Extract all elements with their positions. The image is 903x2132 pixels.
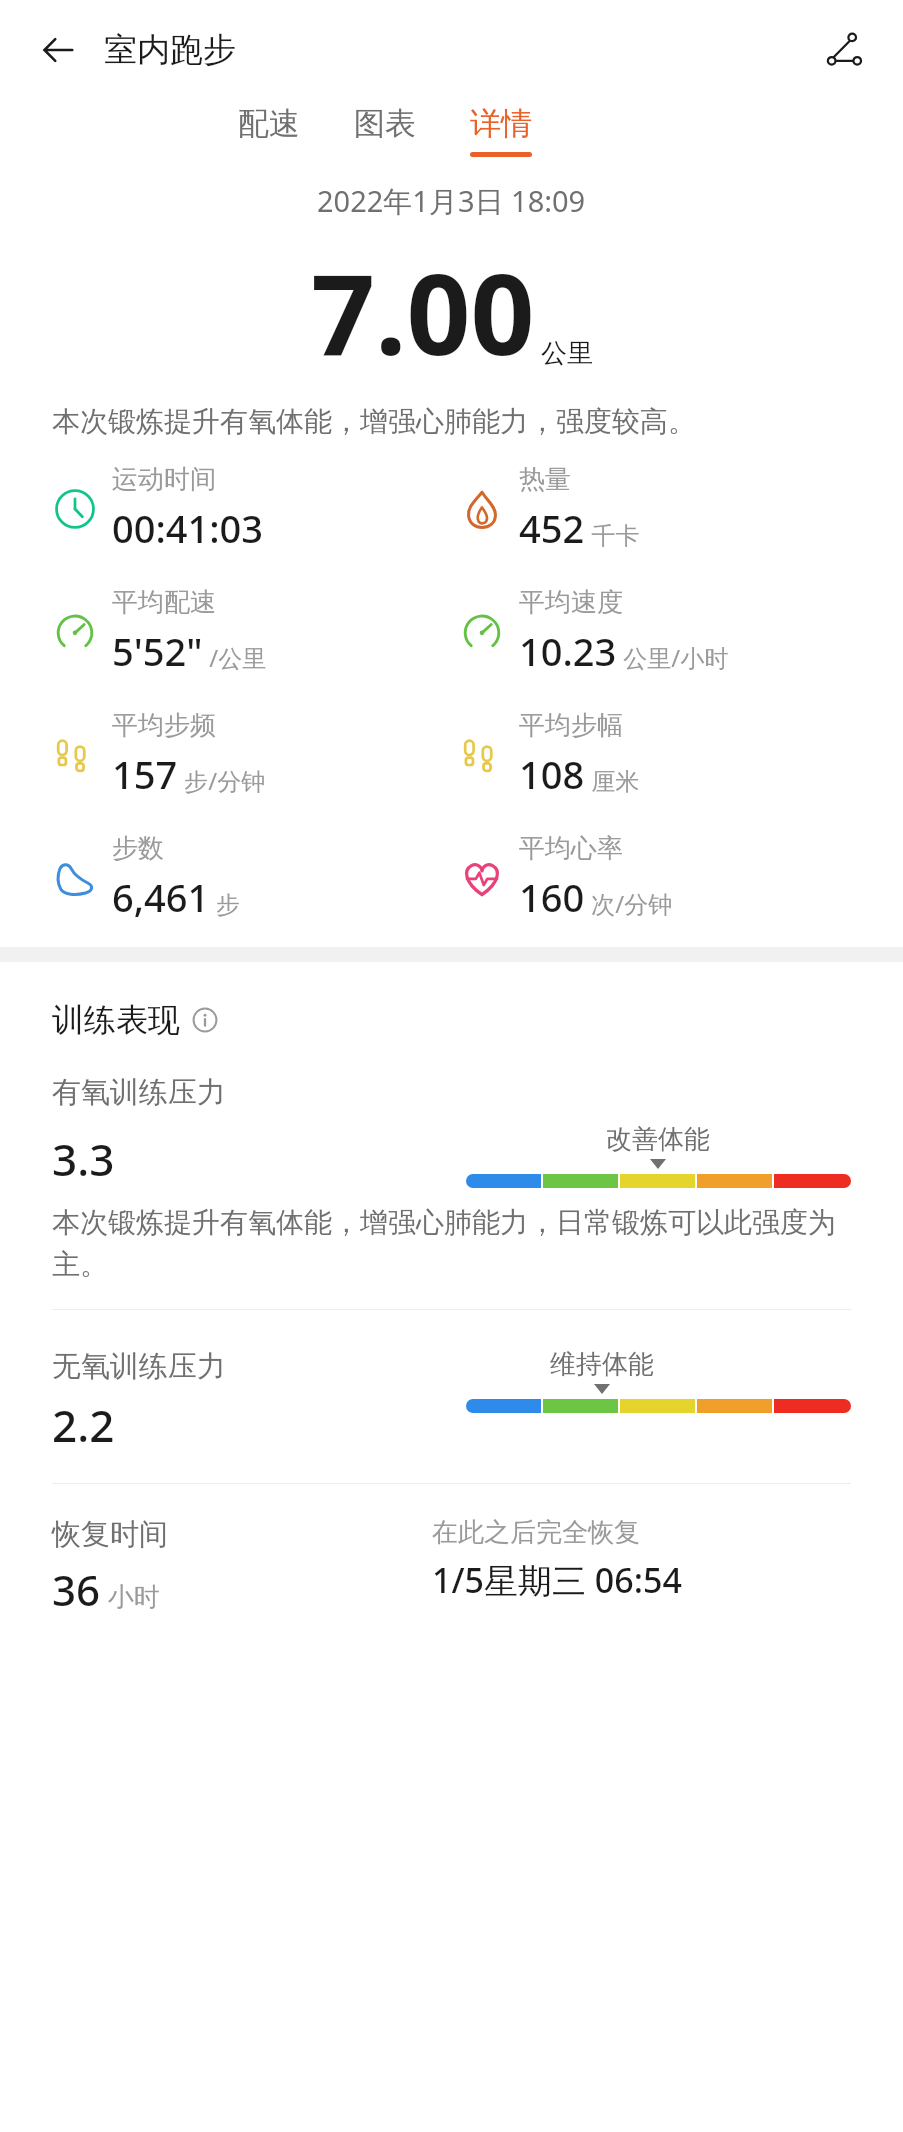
- button[interactable]: 平均配速: [52, 586, 451, 677]
- staticText: 平均速度: [519, 586, 623, 619]
- button[interactable]: 平均步频: [52, 709, 451, 800]
- button[interactable]: 运动时间: [52, 463, 451, 554]
- staticText: 千卡: [585, 518, 640, 551]
- staticText: 1/5星期三 06:54: [432, 1557, 682, 1603]
- button[interactable]: 改善体能: [466, 1123, 851, 1188]
- staticText: 图表: [354, 104, 416, 143]
- staticText: /公里: [203, 641, 267, 674]
- staticText: 厘米: [585, 764, 640, 797]
- staticText: 6,461: [112, 871, 210, 923]
- staticText: 5'52": [112, 625, 203, 677]
- staticText: 本次锻炼提升有氧体能，增强心肺能力，强度较高。: [52, 404, 851, 439]
- staticText: 2022年1月3日 18:09: [317, 181, 586, 221]
- button[interactable]: 训练表现: [52, 1000, 218, 1040]
- button[interactable]: 配速: [230, 100, 308, 161]
- staticText: 36: [52, 1561, 101, 1618]
- staticText: 平均心率: [519, 832, 623, 865]
- staticText: 改善体能: [606, 1123, 710, 1156]
- staticText: 平均步幅: [519, 709, 623, 742]
- staticText: 157: [112, 748, 178, 800]
- staticText: 2.2: [52, 1395, 115, 1455]
- staticText: 452: [519, 502, 585, 554]
- staticText: 训练表现: [52, 1000, 180, 1040]
- staticText: 平均步频: [112, 709, 216, 742]
- staticText: 有氧训练压力: [52, 1074, 226, 1111]
- staticText: 公里/小时: [617, 641, 729, 674]
- staticText: 运动时间: [112, 463, 216, 496]
- staticText: 次/分钟: [585, 887, 673, 920]
- staticText: 3.3: [52, 1129, 115, 1189]
- staticText: 本次锻炼提升有氧体能，增强心肺能力，日常锻炼可以此强度为主。: [52, 1205, 851, 1283]
- staticText: 160: [519, 871, 585, 923]
- button[interactable]: 热量: [459, 463, 903, 554]
- staticText: 平均配速: [112, 586, 216, 619]
- button[interactable]: 步数: [52, 832, 451, 923]
- button[interactable]: Share: [815, 20, 875, 80]
- staticText: 在此之后完全恢复: [432, 1516, 640, 1549]
- button[interactable]: 平均心率: [459, 832, 903, 923]
- button[interactable]: 平均速度: [459, 586, 903, 677]
- staticText: 热量: [519, 463, 571, 496]
- staticText: 00:41:03: [112, 502, 264, 554]
- button[interactable]: 维持体能: [466, 1348, 851, 1413]
- staticText: 恢复时间: [52, 1516, 168, 1553]
- staticText: 10.23: [519, 625, 617, 677]
- button[interactable]: 平均步幅: [459, 709, 903, 800]
- staticText: 配速: [238, 104, 300, 143]
- staticText: 步数: [112, 832, 164, 865]
- staticText: 维持体能: [550, 1348, 654, 1381]
- staticText: 详情: [470, 104, 532, 143]
- staticText: 无氧训练压力: [52, 1348, 226, 1385]
- button[interactable]: Back: [30, 22, 86, 78]
- button[interactable]: 详情: [462, 100, 540, 161]
- staticText: 步: [210, 887, 241, 920]
- staticText: 108: [519, 748, 585, 800]
- other: Info: [192, 1007, 218, 1033]
- staticText: 室内跑步: [104, 29, 236, 71]
- staticText: 小时: [101, 1578, 160, 1614]
- staticText: 公里: [541, 337, 593, 370]
- staticText: 步/分钟: [178, 764, 266, 797]
- button[interactable]: 图表: [346, 100, 424, 161]
- staticText: 7.00: [311, 235, 535, 388]
